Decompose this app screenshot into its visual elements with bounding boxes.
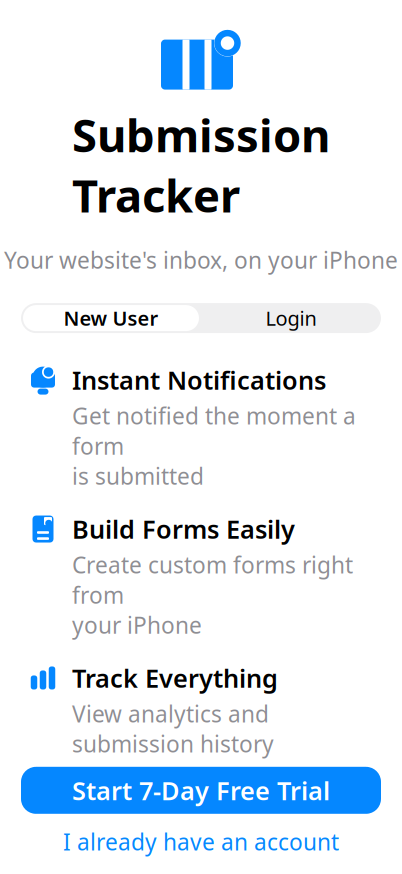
staticText: Create custom forms right from your iPho… xyxy=(72,550,353,640)
staticText: New User xyxy=(63,305,158,331)
button[interactable]: Login xyxy=(201,303,381,333)
staticText: Your website's inbox, on your iPhone xyxy=(4,245,398,275)
staticText: View analytics and submission history xyxy=(72,699,274,759)
staticText: Start 7-Day Free Trial xyxy=(72,773,330,807)
button[interactable]: Start 7-Day Free Trial xyxy=(21,767,381,814)
button[interactable]: New User xyxy=(21,303,201,333)
staticText: Login xyxy=(265,305,316,331)
staticText: Build Forms Easily xyxy=(72,512,295,546)
staticText: Get notified the moment a form is submit… xyxy=(72,401,356,491)
staticText: Track Everything xyxy=(72,661,278,695)
staticText: Submission Tracker xyxy=(72,105,330,225)
staticText: I already have an account xyxy=(63,827,339,857)
button[interactable]: I already have an account xyxy=(21,829,381,855)
staticText: Instant Notifications xyxy=(72,363,326,397)
